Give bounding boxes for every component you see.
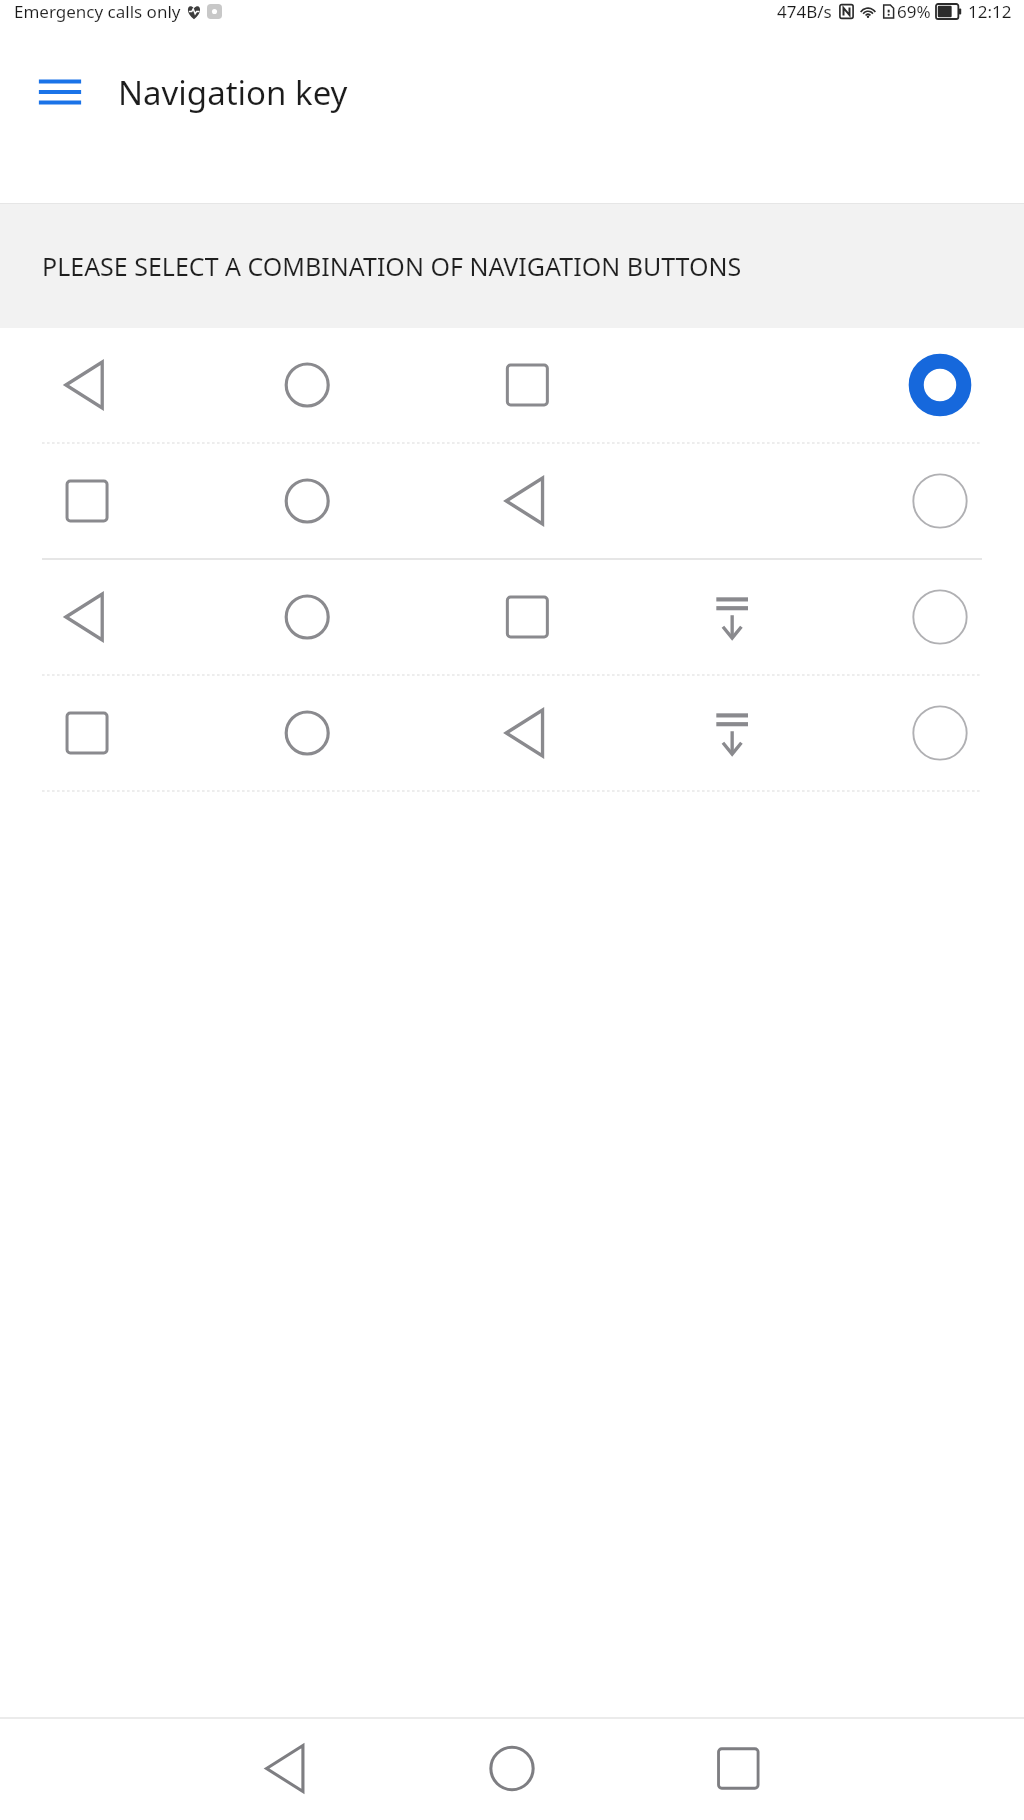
- button[interactable]: Select option: [908, 469, 972, 533]
- button[interactable]: Select option: [0, 560, 1024, 674]
- button[interactable]: Selected option: [0, 328, 1024, 442]
- staticText: PLEASE SELECT A COMBINATION OF NAVIGATIO…: [42, 249, 742, 283]
- button[interactable]: Select option: [908, 585, 972, 649]
- button[interactable]: Select option: [0, 676, 1024, 790]
- button[interactable]: Select option: [908, 701, 972, 765]
- button[interactable]: Open navigation menu: [30, 62, 90, 122]
- button[interactable]: Selected option: [908, 353, 972, 417]
- button[interactable]: Home: [342, 1719, 683, 1820]
- staticText: Navigation key: [118, 70, 348, 115]
- staticText: 474B/s: [777, 0, 832, 23]
- button[interactable]: Recent apps: [683, 1719, 1024, 1820]
- button[interactable]: Select option: [0, 444, 1024, 558]
- staticText: Emergency calls only: [14, 0, 181, 23]
- staticText: 69%: [897, 0, 931, 23]
- staticText: 12:12: [968, 0, 1012, 23]
- button[interactable]: Back: [0, 1719, 342, 1820]
